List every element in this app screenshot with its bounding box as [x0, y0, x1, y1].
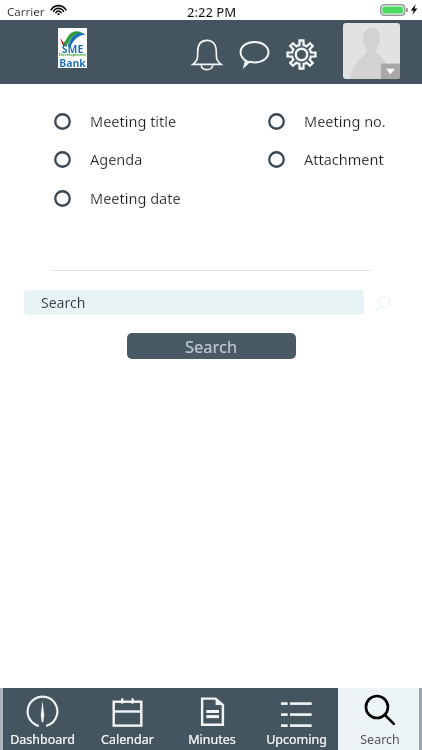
- button[interactable]: Profile menu: [343, 23, 400, 79]
- button[interactable]: Meeting date: [54, 186, 181, 210]
- staticText: Upcoming: [266, 731, 327, 748]
- button[interactable]: Settings: [285, 37, 317, 71]
- button[interactable]: Dashboard: [0, 688, 85, 750]
- staticText: Search: [185, 335, 238, 357]
- staticText: Search: [360, 731, 400, 748]
- staticText: Meeting date: [90, 188, 181, 208]
- staticText: Meeting title: [90, 111, 177, 131]
- staticText: Bank: [58, 56, 87, 70]
- button[interactable]: Agenda: [54, 147, 143, 171]
- staticText: Search: [41, 293, 86, 312]
- staticText: Dashboard: [10, 731, 75, 748]
- button[interactable]: Upcoming: [254, 688, 338, 750]
- button[interactable]: Attachment: [268, 147, 384, 171]
- staticText: Attachment: [304, 149, 384, 169]
- staticText: Agenda: [90, 149, 143, 169]
- staticText: SME: [58, 42, 87, 56]
- button[interactable]: Search: [372, 292, 394, 314]
- button[interactable]: Meeting title: [54, 109, 177, 133]
- button[interactable]: Meeting no.: [268, 109, 386, 133]
- button[interactable]: Search: [24, 290, 364, 315]
- button[interactable]: Search: [127, 333, 296, 359]
- button[interactable]: Minutes: [170, 688, 254, 750]
- button[interactable]: Messages: [238, 37, 270, 71]
- staticText: Calendar: [101, 731, 154, 748]
- button[interactable]: Notifications: [191, 37, 223, 71]
- button[interactable]: SME Bank logo: [58, 28, 87, 68]
- staticText: Minutes: [188, 731, 236, 748]
- button[interactable]: Calendar: [85, 688, 170, 750]
- staticText: 2:22 PM: [187, 3, 237, 21]
- button[interactable]: Search: [338, 688, 422, 750]
- staticText: Development: [58, 52, 87, 57]
- staticText: Carrier: [7, 4, 45, 20]
- staticText: Meeting no.: [304, 111, 386, 131]
